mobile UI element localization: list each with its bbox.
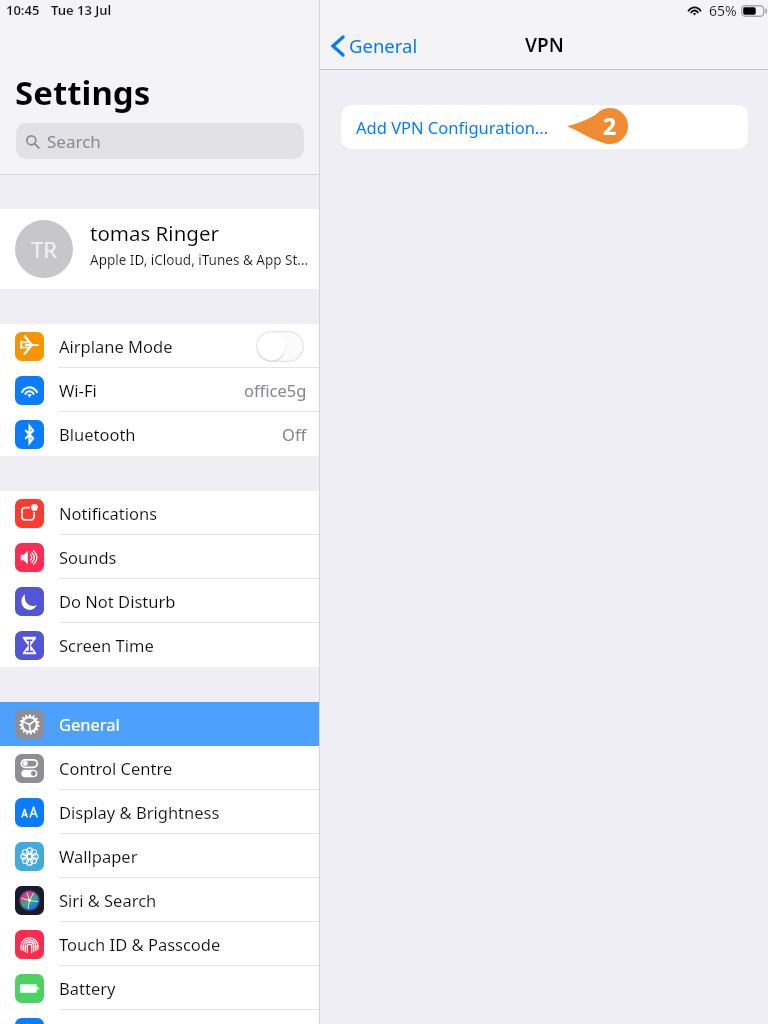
staticText: Screen Time [59,634,154,656]
staticText: General [349,33,418,58]
staticText: 65% [709,1,737,20]
button[interactable]: Wallpaper [0,834,320,878]
staticText: Control Centre [59,757,173,779]
staticText: office5g [244,379,307,401]
staticText: TR [31,234,57,264]
staticText: 10:45 [6,1,40,19]
button[interactable]: TR [0,209,320,289]
button[interactable]: Bluetooth [0,412,320,456]
staticText: Airplane Mode [59,335,173,357]
staticText: Add VPN Configuration... [356,116,549,138]
button[interactable]: Screen Time [0,623,320,667]
button[interactable]: Add VPN Configuration... [341,105,748,149]
staticText: Off [282,423,307,445]
button[interactable]: Airplane Mode toggle [256,331,304,362]
button[interactable]: Search [16,123,304,159]
staticText: Display & Brightness [59,801,220,823]
button[interactable]: Wi-Fi [0,368,320,412]
button[interactable]: Battery [0,966,320,1010]
button[interactable]: Sounds [0,535,320,579]
staticText: Wi-Fi [59,379,97,401]
button[interactable]: Airplane Mode [0,324,320,368]
staticText: General [59,713,120,735]
staticText: Touch ID & Passcode [59,933,221,955]
button[interactable]: Display & Brightness [0,790,320,834]
staticText: Search [47,130,101,153]
staticText: Siri & Search [59,889,157,911]
staticText: Apple ID, iCloud, iTunes & App St... [90,251,309,269]
staticText: Wallpaper [59,845,138,867]
button[interactable]: Do Not Disturb [0,579,320,623]
staticText: Tue 13 Jul [51,1,112,19]
staticText: VPN [525,32,564,58]
button[interactable]: Siri & Search [0,878,320,922]
button[interactable]: Control Centre [0,746,320,790]
button[interactable]: Privacy [0,1010,320,1024]
button[interactable]: General [0,702,320,746]
staticText: Notifications [59,502,158,524]
staticText: Do Not Disturb [59,590,176,612]
staticText: Settings [15,70,151,115]
staticText: 2 [603,110,617,141]
button[interactable]: Touch ID & Passcode [0,922,320,966]
button[interactable]: Notifications [0,491,320,535]
staticText: Battery [59,977,116,999]
staticText: tomas Ringer [90,219,219,247]
button[interactable]: General [331,33,418,58]
staticText: Bluetooth [59,423,136,445]
staticText: Sounds [59,546,117,568]
